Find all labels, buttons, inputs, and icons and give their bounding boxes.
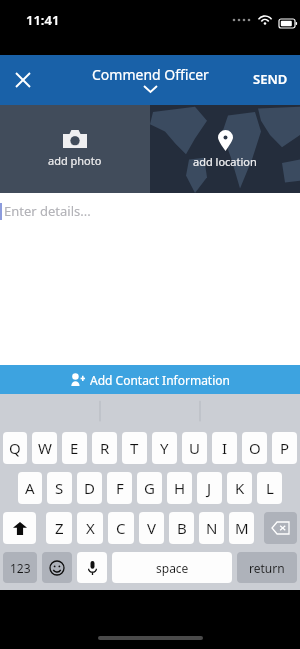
button[interactable]: Close (8, 65, 38, 95)
button[interactable]: Emoji (42, 552, 72, 583)
staticText: B (177, 518, 187, 538)
staticText: A (25, 478, 35, 498)
button[interactable]: return (237, 552, 297, 583)
button[interactable]: N (199, 512, 224, 544)
staticText: R (100, 438, 110, 458)
button[interactable]: Backspace (264, 512, 297, 544)
staticText: K (235, 478, 245, 498)
button[interactable]: V (139, 512, 164, 544)
button[interactable]: G (137, 472, 162, 504)
button[interactable]: Shift (3, 512, 36, 544)
button[interactable]: SEND (249, 66, 292, 92)
button[interactable]: U (182, 432, 207, 464)
button[interactable]: R (92, 432, 117, 464)
button[interactable]: C (108, 512, 134, 544)
staticText: space (156, 560, 189, 576)
staticText: H (174, 478, 186, 498)
staticText: P (280, 438, 290, 458)
button[interactable]: H (167, 472, 192, 504)
button[interactable]: 123 (3, 552, 37, 583)
button[interactable]: S (47, 472, 72, 504)
staticText: return (249, 560, 285, 576)
staticText: 11:41 (26, 11, 60, 29)
button[interactable]: X (77, 512, 103, 544)
staticText: O (249, 438, 261, 458)
button[interactable]: A (18, 472, 42, 504)
button[interactable]: M (229, 512, 254, 544)
staticText: N (206, 518, 218, 538)
button[interactable]: E (62, 432, 87, 464)
button[interactable]: Z (46, 512, 72, 544)
button[interactable]: L (257, 472, 282, 504)
staticText: Commend Officer (92, 65, 209, 84)
staticText: G (144, 478, 155, 498)
staticText: I (222, 438, 228, 458)
button[interactable]: K (227, 472, 252, 504)
staticText: U (189, 438, 200, 458)
button[interactable]: O (242, 432, 267, 464)
staticText: X (86, 518, 95, 538)
button[interactable]: Add Contact Information (0, 365, 300, 394)
staticText: add location (193, 154, 257, 169)
button[interactable]: space (112, 552, 232, 583)
button[interactable]: F (107, 472, 132, 504)
button[interactable]: add location (150, 105, 300, 193)
button[interactable]: W (32, 432, 57, 464)
button[interactable]: J (197, 472, 222, 504)
staticText: Q (9, 438, 21, 458)
staticText: 123 (10, 560, 31, 576)
button[interactable]: Dictation (77, 552, 107, 583)
staticText: T (130, 438, 139, 458)
staticText: C (116, 518, 126, 538)
staticText: F (116, 478, 124, 498)
staticText: S (55, 478, 64, 498)
button[interactable]: D (77, 472, 102, 504)
button[interactable]: Y (152, 432, 177, 464)
staticText: M (235, 518, 249, 538)
staticText: Z (55, 518, 64, 538)
staticText: V (147, 518, 157, 538)
staticText: E (70, 438, 79, 458)
staticText: Add Contact Information (90, 372, 230, 388)
staticText: Y (160, 438, 169, 458)
button[interactable]: Q (3, 432, 27, 464)
button[interactable]: I (212, 432, 237, 464)
button[interactable]: T (122, 432, 147, 464)
staticText: W (38, 438, 52, 458)
staticText: SEND (253, 70, 288, 88)
staticText: L (266, 478, 274, 498)
button[interactable]: add photo (0, 105, 150, 193)
staticText: D (84, 478, 95, 498)
button[interactable]: P (272, 432, 297, 464)
staticText: Enter details... (4, 202, 91, 220)
staticText: add photo (48, 153, 102, 168)
staticText: J (207, 478, 212, 498)
button[interactable]: B (169, 512, 194, 544)
